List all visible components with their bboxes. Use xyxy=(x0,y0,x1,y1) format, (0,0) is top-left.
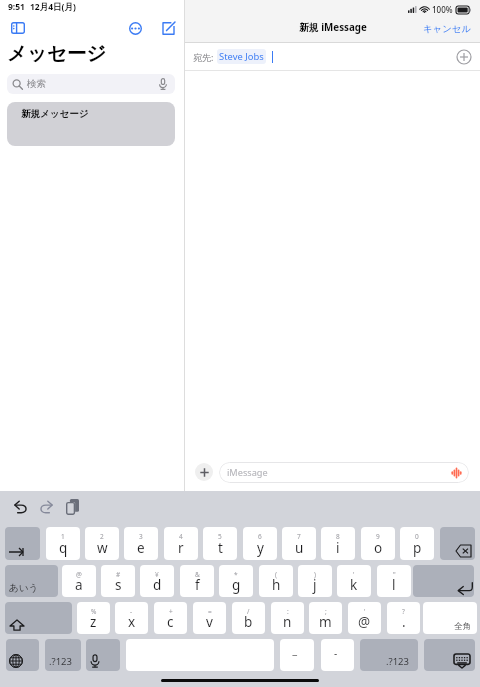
button[interactable]: Add attachment xyxy=(195,463,213,481)
button[interactable]: ) xyxy=(298,565,332,597)
button[interactable]: Paste xyxy=(61,496,83,518)
staticText: ; xyxy=(325,607,327,616)
staticText: .?123 xyxy=(386,655,409,668)
button[interactable]: 8 xyxy=(321,527,355,560)
button[interactable]: / xyxy=(232,602,265,634)
staticText: = xyxy=(208,607,212,616)
staticText: + xyxy=(169,607,173,616)
button[interactable]: @ xyxy=(62,565,96,597)
button[interactable]: Steve Jobs xyxy=(217,49,266,64)
staticText: c xyxy=(167,613,174,631)
button[interactable]: ; xyxy=(309,602,342,634)
staticText: a xyxy=(75,576,83,594)
button[interactable]: 6 xyxy=(243,527,277,560)
staticText: # xyxy=(116,570,121,579)
button[interactable] xyxy=(5,527,40,560)
button[interactable]: More xyxy=(123,16,147,40)
button[interactable]: あいう xyxy=(5,565,58,597)
staticText: q xyxy=(59,539,68,557)
staticText: 1 xyxy=(61,532,65,541)
button[interactable] xyxy=(440,527,475,560)
button[interactable] xyxy=(86,639,120,671)
staticText: 4 xyxy=(179,532,183,541)
staticText: 5 xyxy=(218,532,222,541)
staticText: d xyxy=(153,576,162,594)
button[interactable]: - xyxy=(321,639,354,671)
staticText: 12月4日(月) xyxy=(30,1,76,13)
button[interactable]: - xyxy=(115,602,148,634)
button[interactable]: Sidebar xyxy=(6,16,30,40)
staticText: x xyxy=(128,613,136,631)
button[interactable]: 1 xyxy=(46,527,80,560)
staticText: j xyxy=(313,576,317,594)
button[interactable]: 4 xyxy=(164,527,198,560)
button[interactable]: 検索 xyxy=(7,74,175,94)
staticText: b xyxy=(244,613,253,631)
button[interactable]: Add contact xyxy=(456,49,472,65)
button[interactable]: * xyxy=(219,565,253,597)
staticText: 6 xyxy=(258,532,262,541)
button[interactable]: ( xyxy=(259,565,293,597)
staticText: m xyxy=(319,613,332,631)
button[interactable]: 新規メッセージ xyxy=(7,102,175,146)
staticText: 宛先: xyxy=(193,51,214,63)
button[interactable]: ' xyxy=(348,602,381,634)
staticText: ' xyxy=(353,570,355,579)
button[interactable] xyxy=(5,602,72,634)
button[interactable]: キャンセル xyxy=(419,21,476,37)
button[interactable]: % xyxy=(77,602,110,634)
staticText: s xyxy=(115,576,122,594)
staticText: 100% xyxy=(432,4,453,15)
button[interactable] xyxy=(6,639,39,671)
staticText: 9:51 xyxy=(8,1,25,13)
staticText: 検索 xyxy=(27,78,46,90)
staticText: v xyxy=(206,613,213,631)
staticText: @ xyxy=(76,570,82,579)
staticText: & xyxy=(195,570,200,579)
button[interactable]: Compose xyxy=(156,16,180,40)
button[interactable]: 3 xyxy=(124,527,158,560)
button[interactable]: " xyxy=(377,565,411,597)
button[interactable]: # xyxy=(101,565,135,597)
button[interactable]: + xyxy=(154,602,187,634)
button[interactable]: 5 xyxy=(203,527,237,560)
button[interactable]: .?123 xyxy=(360,639,418,671)
staticText: 7 xyxy=(297,532,301,541)
staticText: メッセージ xyxy=(7,41,107,66)
button[interactable]: : xyxy=(271,602,304,634)
button[interactable]: .?123 xyxy=(45,639,81,671)
button[interactable]: = xyxy=(193,602,226,634)
staticText: z xyxy=(90,613,97,631)
button[interactable]: − xyxy=(280,639,314,671)
button[interactable]: 2 xyxy=(85,527,119,560)
staticText: e xyxy=(137,539,145,557)
button[interactable]: ' xyxy=(337,565,371,597)
staticText: f xyxy=(195,576,200,594)
staticText: i xyxy=(336,539,340,557)
button[interactable]: 全角 xyxy=(423,602,477,634)
button[interactable]: Redo xyxy=(35,496,57,518)
button[interactable] xyxy=(413,565,474,597)
staticText: 新規メッセージ xyxy=(21,108,89,120)
staticText: 新規 iMessage xyxy=(299,21,367,34)
button[interactable]: iMessage xyxy=(219,462,469,483)
staticText: r xyxy=(178,539,184,557)
button[interactable]: Undo xyxy=(9,496,31,518)
staticText: o xyxy=(374,539,383,557)
staticText: ) xyxy=(314,570,316,579)
staticText: ( xyxy=(275,570,277,579)
button[interactable]: 0 xyxy=(400,527,434,560)
button[interactable]: ¥ xyxy=(140,565,174,597)
button[interactable]: ? xyxy=(387,602,420,634)
button[interactable]: 7 xyxy=(282,527,316,560)
staticText: - xyxy=(334,646,338,660)
staticText: u xyxy=(295,539,304,557)
button[interactable] xyxy=(424,639,475,671)
staticText: ? xyxy=(402,607,405,616)
staticText: 3 xyxy=(139,532,143,541)
staticText: g xyxy=(232,576,241,594)
staticText: / xyxy=(247,607,250,616)
button[interactable]: & xyxy=(180,565,214,597)
button[interactable]: 9 xyxy=(361,527,395,560)
